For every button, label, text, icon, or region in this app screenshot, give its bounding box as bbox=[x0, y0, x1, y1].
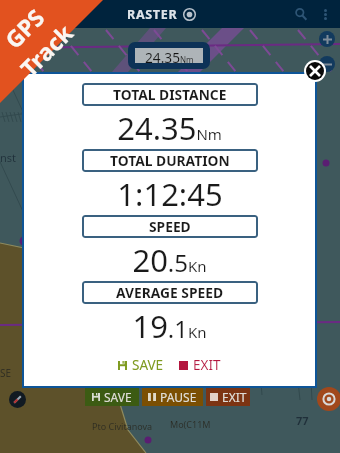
staticText: 24.35Nm bbox=[145, 48, 194, 63]
staticText: Mo(C11M bbox=[170, 418, 211, 430]
staticText: SE bbox=[0, 366, 12, 380]
staticText: Track bbox=[13, 17, 79, 83]
button[interactable]: Distance bbox=[128, 42, 210, 69]
staticText: Pto Civitanova bbox=[92, 420, 153, 432]
staticText: SAVE bbox=[104, 389, 132, 405]
staticText: TOTAL DISTANCE bbox=[113, 85, 227, 104]
staticText: SAVE bbox=[132, 356, 164, 374]
staticText: 24.35Nm bbox=[117, 107, 222, 149]
staticText: 20.5Kn bbox=[132, 239, 207, 281]
staticText: TOTAL DURATION bbox=[110, 151, 230, 170]
button[interactable]: EXIT bbox=[206, 388, 250, 406]
staticText: 19.1Kn bbox=[132, 305, 207, 347]
button[interactable]: My location bbox=[317, 387, 340, 411]
button[interactable]: EXIT bbox=[178, 356, 222, 374]
button[interactable]: Compass bbox=[9, 391, 26, 408]
button[interactable]: Search bbox=[289, 2, 313, 26]
button[interactable]: More options bbox=[315, 4, 335, 24]
staticText: GPS bbox=[0, 1, 50, 54]
staticText: PAUSE bbox=[160, 389, 197, 405]
staticText: SPEED bbox=[149, 217, 191, 236]
staticText: nst bbox=[0, 150, 17, 165]
staticText: RASTER bbox=[127, 6, 178, 23]
button[interactable]: PAUSE bbox=[142, 388, 203, 406]
button[interactable]: SAVE bbox=[85, 388, 139, 406]
staticText: EXIT bbox=[193, 356, 221, 374]
button[interactable]: Zoom out bbox=[319, 56, 335, 72]
staticText: EXIT bbox=[222, 389, 247, 405]
staticText: AVERAGE SPEED bbox=[116, 283, 224, 302]
staticText: 77 bbox=[296, 413, 309, 428]
button[interactable]: SAVE bbox=[117, 356, 165, 374]
button[interactable]: Zoom in bbox=[319, 31, 335, 47]
button[interactable]: Close bbox=[304, 60, 326, 82]
staticText: 1:12:45 bbox=[117, 173, 223, 215]
